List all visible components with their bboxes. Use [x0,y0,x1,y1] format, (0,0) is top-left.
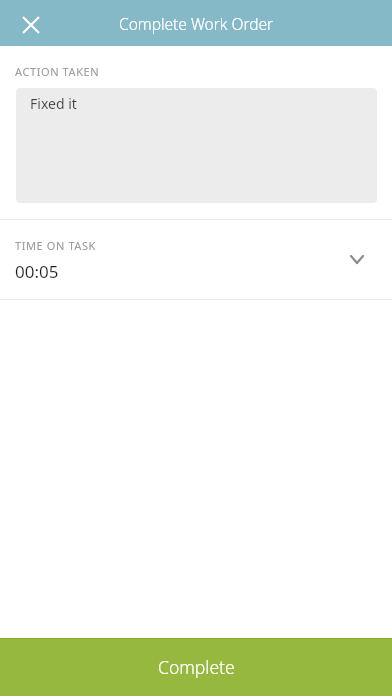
button[interactable]: Fixed it [16,88,377,203]
other: Expand [351,256,363,263]
staticText: Fixed it [30,94,77,113]
button[interactable]: Close [14,8,48,42]
staticText: TIME ON TASK [15,238,97,253]
staticText: Complete [158,655,235,679]
staticText: ACTION TAKEN [15,64,100,79]
staticText: Complete Work Order [119,13,274,34]
staticText: 00:05 [15,260,59,283]
button[interactable]: Complete [0,638,392,696]
button[interactable]: TIME ON TASK [0,220,392,299]
